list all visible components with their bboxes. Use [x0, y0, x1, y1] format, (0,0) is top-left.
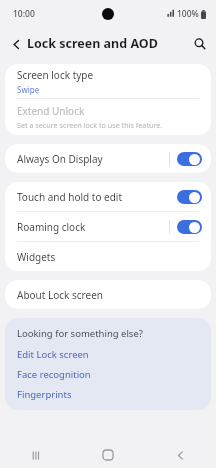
- button[interactable]: Roaming clock: [5, 212, 211, 241]
- staticText: Set a secure screen lock to use this fea…: [17, 120, 163, 130]
- button[interactable]: [177, 152, 202, 166]
- button[interactable]: Edit Lock screen: [17, 348, 89, 361]
- button[interactable]: Widgets: [5, 242, 211, 271]
- staticText: Touch and hold to edit: [17, 190, 177, 204]
- staticText: Swipe: [17, 84, 40, 95]
- button[interactable]: Screen lock type: [5, 64, 211, 98]
- staticText: Lock screen and AOD: [27, 35, 158, 52]
- staticText: Always On Display: [17, 152, 169, 166]
- button[interactable]: Face recognition: [17, 368, 91, 381]
- staticText: 100%: [177, 8, 199, 20]
- staticText: Widgets: [17, 250, 56, 264]
- staticText: Edit Lock screen: [17, 348, 89, 361]
- button[interactable]: [177, 190, 202, 204]
- button[interactable]: Recent apps: [0, 442, 72, 468]
- staticText: Screen lock type: [17, 68, 94, 82]
- button[interactable]: Home: [72, 442, 144, 468]
- staticText: Roaming clock: [17, 220, 169, 234]
- staticText: Fingerprints: [17, 388, 72, 401]
- button[interactable]: Touch and hold to edit: [5, 182, 211, 211]
- button[interactable]: Search: [189, 33, 211, 55]
- button[interactable]: Extend Unlock: [5, 99, 211, 135]
- button[interactable]: Back: [144, 442, 216, 468]
- staticText: Looking for something else?: [17, 327, 143, 340]
- staticText: Face recognition: [17, 368, 91, 381]
- button[interactable]: Fingerprints: [17, 388, 72, 401]
- staticText: Extend Unlock: [17, 104, 85, 118]
- button[interactable]: About Lock screen: [5, 280, 211, 309]
- staticText: 10:00: [13, 8, 35, 20]
- button[interactable]: Back: [5, 33, 27, 55]
- staticText: About Lock screen: [17, 288, 103, 302]
- button[interactable]: [177, 220, 202, 234]
- button[interactable]: Always On Display: [5, 144, 211, 173]
